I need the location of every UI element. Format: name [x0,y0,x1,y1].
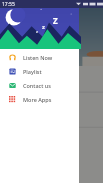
button[interactable]: Listen Now [0,50,79,64]
button[interactable]: Contact us [0,78,79,92]
staticText: z [42,23,45,31]
button[interactable]: Playlist [0,64,79,78]
staticText: Playlist [23,68,42,75]
staticText: Z [53,15,58,26]
staticText: Listen Now [23,54,53,61]
staticText: z [36,29,38,34]
staticText: Contact us [23,82,51,89]
staticText: 17:55 [2,1,15,8]
staticText: More Apps [23,96,52,103]
button[interactable]: More Apps [0,92,79,106]
